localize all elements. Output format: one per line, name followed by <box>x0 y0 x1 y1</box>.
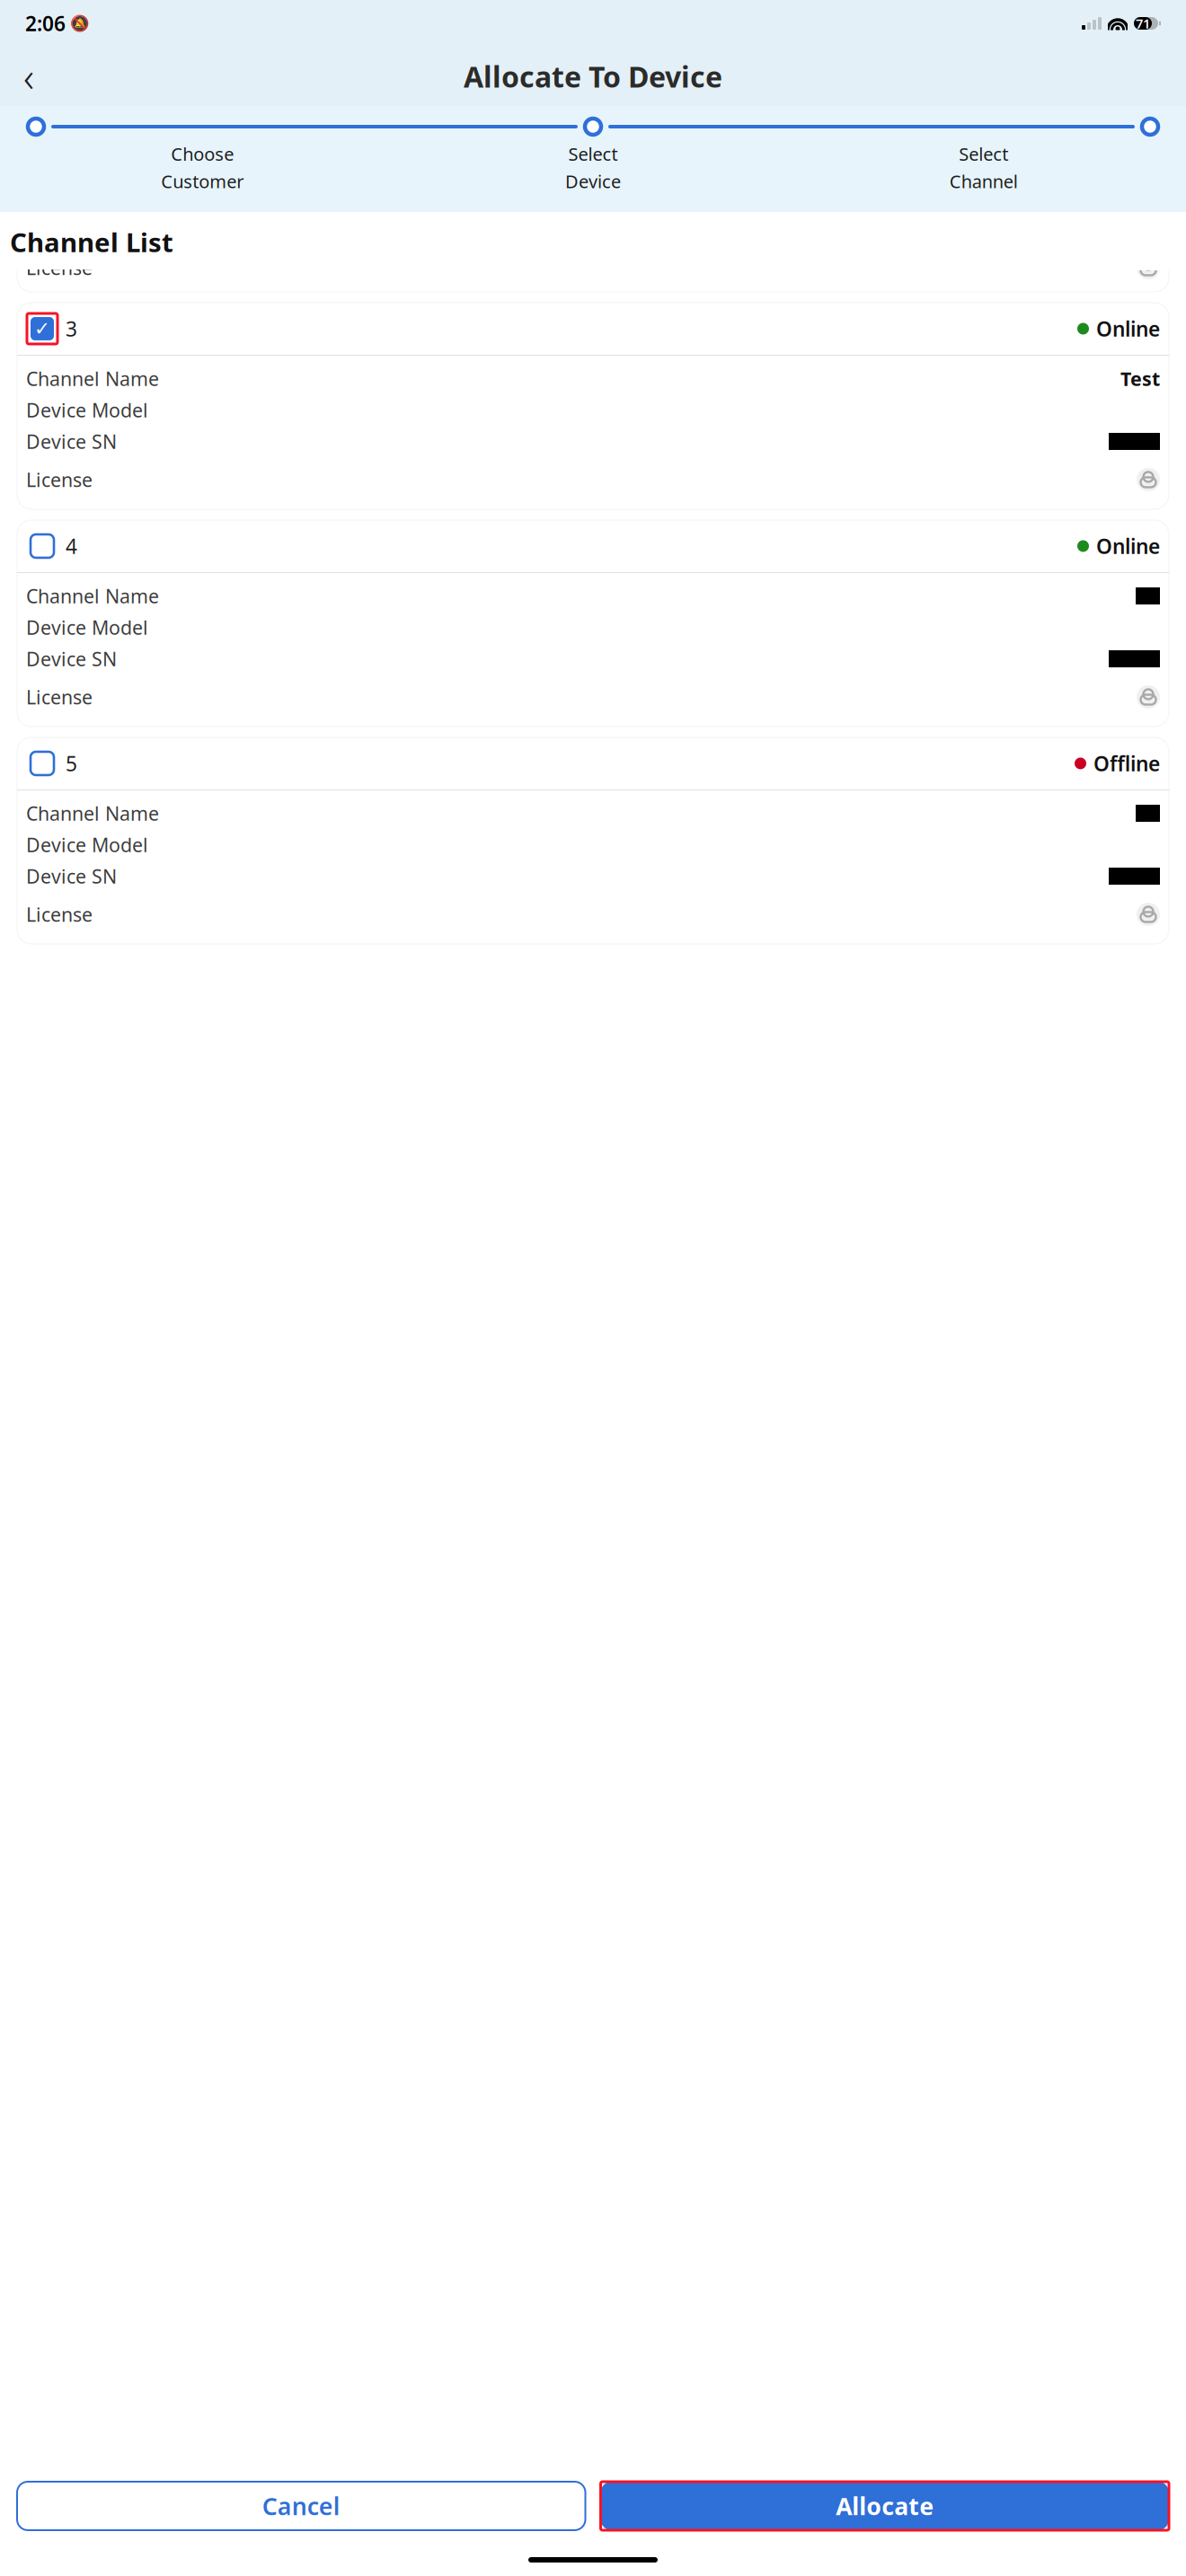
staticText: License <box>26 255 93 280</box>
staticText: Choose <box>171 142 234 166</box>
staticText: Channel <box>949 169 1018 193</box>
staticText: Select <box>959 142 1008 166</box>
staticText: License <box>26 684 93 710</box>
staticText: Device Model <box>26 832 148 857</box>
staticText: Cancel <box>262 2490 340 2522</box>
button[interactable]: Back <box>0 47 1186 106</box>
staticText: Allocate <box>836 2490 934 2522</box>
staticText: Test <box>1120 366 1160 391</box>
button[interactable]: 5 <box>17 737 1169 790</box>
staticText: Device SN <box>26 646 117 671</box>
button[interactable]: Allocate <box>601 2482 1169 2530</box>
button[interactable]: Cancel <box>17 2482 585 2530</box>
staticText: Channel List <box>10 225 173 260</box>
staticText: License <box>26 902 93 927</box>
staticText: ‹ <box>23 49 34 103</box>
staticText: License <box>26 467 93 492</box>
staticText: 2:06 <box>25 10 66 37</box>
staticText: Allocate To Device <box>464 57 722 95</box>
staticText: Offline <box>1093 750 1160 777</box>
staticText: Online <box>1096 315 1160 342</box>
button[interactable]: ✓ <box>17 303 1169 355</box>
staticText: Device SN <box>26 863 117 889</box>
staticText: Channel Name <box>26 801 159 826</box>
staticText: Select <box>568 142 618 166</box>
staticText: 3 <box>66 315 77 342</box>
staticText: 71 <box>1136 15 1150 32</box>
staticText: Device Model <box>26 397 148 423</box>
staticText: Customer <box>161 169 244 193</box>
staticText: Device SN <box>26 429 117 454</box>
staticText: Device Model <box>26 615 148 640</box>
staticText: 🔕 <box>70 14 90 32</box>
staticText: Channel Name <box>26 583 159 609</box>
staticText: 4 <box>66 533 77 560</box>
staticText: Channel Name <box>26 366 159 391</box>
button[interactable]: 4 <box>17 520 1169 572</box>
staticText: 5 <box>66 750 77 777</box>
staticText: ✓ <box>34 318 50 340</box>
staticText: Device <box>565 169 621 193</box>
staticText: Online <box>1096 533 1160 560</box>
